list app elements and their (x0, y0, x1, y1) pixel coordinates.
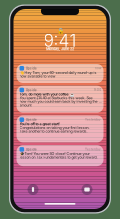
staticText: now available to view (19, 74, 55, 78)
button[interactable]: Upside (16, 86, 103, 113)
staticText: Monday, June 22 (46, 47, 74, 51)
staticText: Upside (26, 147, 37, 151)
staticText: Take another to continue earning rewards… (19, 129, 87, 133)
button[interactable]: Upside (16, 115, 103, 142)
staticText: 🎓 Tom! You were SO close! Continue your (19, 151, 89, 156)
button[interactable]: Upside (16, 145, 103, 166)
staticText: Yesterday (85, 148, 101, 151)
staticText: lesson on Tax Fundamentals to get your r… (19, 155, 97, 159)
staticText: Tom, do more with your coffee ☕ (19, 92, 73, 96)
staticText: 🔒 (56, 27, 63, 34)
button[interactable]: Upside (16, 64, 103, 83)
staticText: 👋 Hey Tom, your 60-second daily round-up… (19, 70, 96, 75)
staticText: how much you could earn back by investin… (19, 99, 101, 104)
staticText: Upside (26, 66, 37, 70)
staticText: 9:41 (43, 30, 76, 51)
staticText: Yesterday (85, 118, 101, 121)
staticText: 9:04 (94, 88, 101, 92)
button[interactable]: Camera (81, 184, 92, 195)
staticText: Congratulations on taking your first les… (19, 125, 89, 130)
staticText: You're off to a great start! (19, 122, 59, 126)
staticText: You spent £14.40 at Starbucks this week.… (19, 96, 92, 100)
staticText: amount (19, 103, 31, 107)
staticText: now (95, 66, 101, 70)
button[interactable]: Flashlight (27, 184, 38, 195)
staticText: Upside (26, 88, 37, 92)
staticText: Upside (26, 118, 37, 122)
